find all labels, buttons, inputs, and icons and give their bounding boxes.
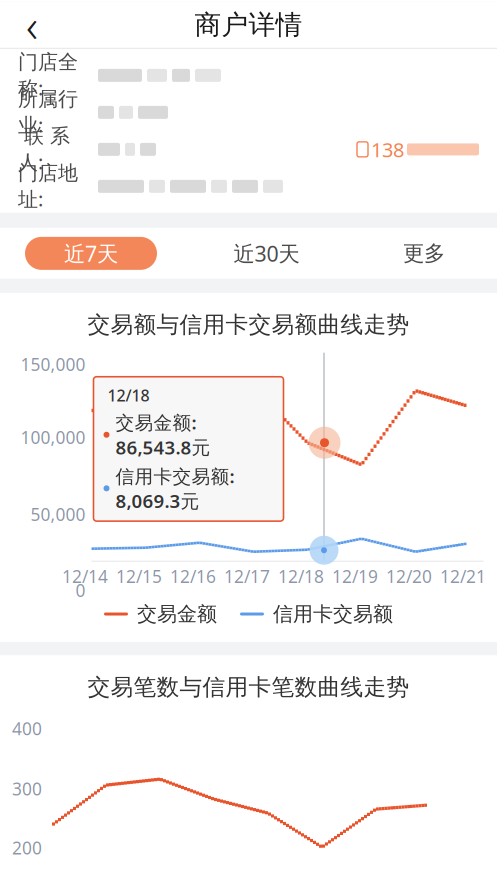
- button[interactable]: Back: [10, 3, 54, 47]
- staticText: 12/14: [62, 565, 108, 588]
- staticText: 400: [12, 717, 42, 740]
- staticText: 138: [371, 136, 404, 163]
- staticText: 信用卡交易额: 8,069.3元: [115, 463, 234, 513]
- staticText: 交易金额: 86,543.8元: [115, 410, 210, 460]
- button[interactable]: 近30天: [214, 237, 318, 270]
- staticText: 150,000: [20, 353, 85, 376]
- staticText: 信用卡交易额: [273, 602, 393, 626]
- staticText: 12/18: [107, 385, 149, 406]
- staticText: 200: [12, 836, 42, 859]
- staticText: 100,000: [20, 426, 85, 449]
- staticText: 12/18: [278, 565, 324, 588]
- staticText: 12/16: [170, 565, 216, 588]
- staticText: 12/15: [116, 565, 162, 588]
- button[interactable]: 更多: [376, 237, 472, 270]
- staticText: ‹: [26, 0, 38, 55]
- staticText: 联 系 人:: [18, 124, 70, 175]
- staticText: 近7天: [64, 239, 118, 267]
- staticText: 更多: [403, 240, 445, 266]
- staticText: 12/21: [440, 565, 486, 588]
- staticText: 门店全称:: [18, 50, 78, 101]
- button[interactable]: 138: [357, 136, 479, 163]
- staticText: 近30天: [233, 239, 299, 267]
- button[interactable]: 近7天: [25, 237, 157, 270]
- staticText: 50,000: [30, 503, 85, 526]
- staticText: 0: [75, 579, 85, 602]
- staticText: 12/17: [224, 565, 270, 588]
- staticText: 12/19: [332, 565, 378, 588]
- staticText: 交易额与信用卡交易额曲线走势: [87, 311, 409, 339]
- staticText: 交易金额: [137, 602, 217, 626]
- staticText: 商户详情: [194, 8, 302, 41]
- staticText: 12/20: [386, 565, 432, 588]
- staticText: 交易笔数与信用卡笔数曲线走势: [87, 673, 409, 701]
- staticText: 门店地址:: [18, 161, 78, 212]
- staticText: 300: [12, 777, 42, 800]
- staticText: 所属行业:: [18, 87, 78, 138]
